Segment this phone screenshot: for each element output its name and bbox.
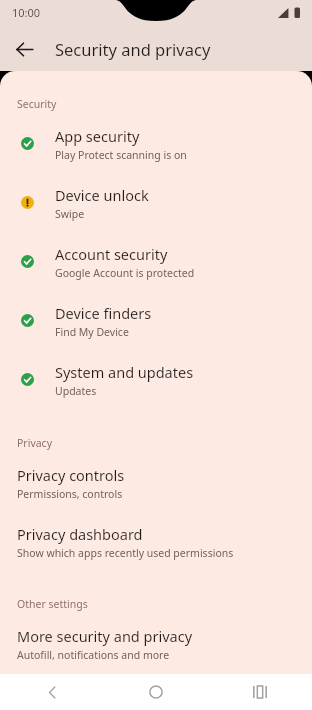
staticText: Google Account is protected <box>55 266 195 280</box>
staticText: App security <box>55 126 140 146</box>
staticText: 10:00 <box>12 5 41 20</box>
button[interactable]: App security <box>0 114 312 173</box>
staticText: Security and privacy <box>55 38 211 60</box>
button[interactable]: Back <box>0 674 104 710</box>
staticText: Security <box>17 97 57 111</box>
staticText: Updates <box>55 384 97 398</box>
button[interactable]: Home <box>104 674 208 710</box>
staticText: Privacy dashboard <box>17 524 143 544</box>
staticText: Device finders <box>55 303 152 323</box>
staticText: Other settings <box>17 597 88 611</box>
button[interactable]: Account security <box>0 232 312 291</box>
staticText: Privacy controls <box>17 465 125 485</box>
staticText: Account security <box>55 244 168 264</box>
button[interactable]: More security and privacy <box>0 614 312 673</box>
staticText: Play Protect scanning is on <box>55 148 187 162</box>
button[interactable]: Recent apps <box>208 674 312 710</box>
staticText: More security and privacy <box>17 626 193 646</box>
staticText: Autofill, notifications and more <box>17 648 170 662</box>
staticText: Find My Device <box>55 325 129 339</box>
staticText: System and updates <box>55 362 194 382</box>
button[interactable]: Privacy controls <box>0 453 312 512</box>
staticText: Device unlock <box>55 185 149 205</box>
button[interactable]: Device finders <box>0 291 312 350</box>
button[interactable]: Back <box>6 31 42 67</box>
button[interactable]: Device unlock <box>0 173 312 232</box>
staticText: Swipe <box>55 207 85 221</box>
button[interactable]: Privacy dashboard <box>0 512 312 571</box>
staticText: Permissions, controls <box>17 487 123 501</box>
button[interactable]: System and updates <box>0 350 312 409</box>
staticText: Show which apps recently used permission… <box>17 546 234 560</box>
staticText: Privacy <box>17 436 53 450</box>
